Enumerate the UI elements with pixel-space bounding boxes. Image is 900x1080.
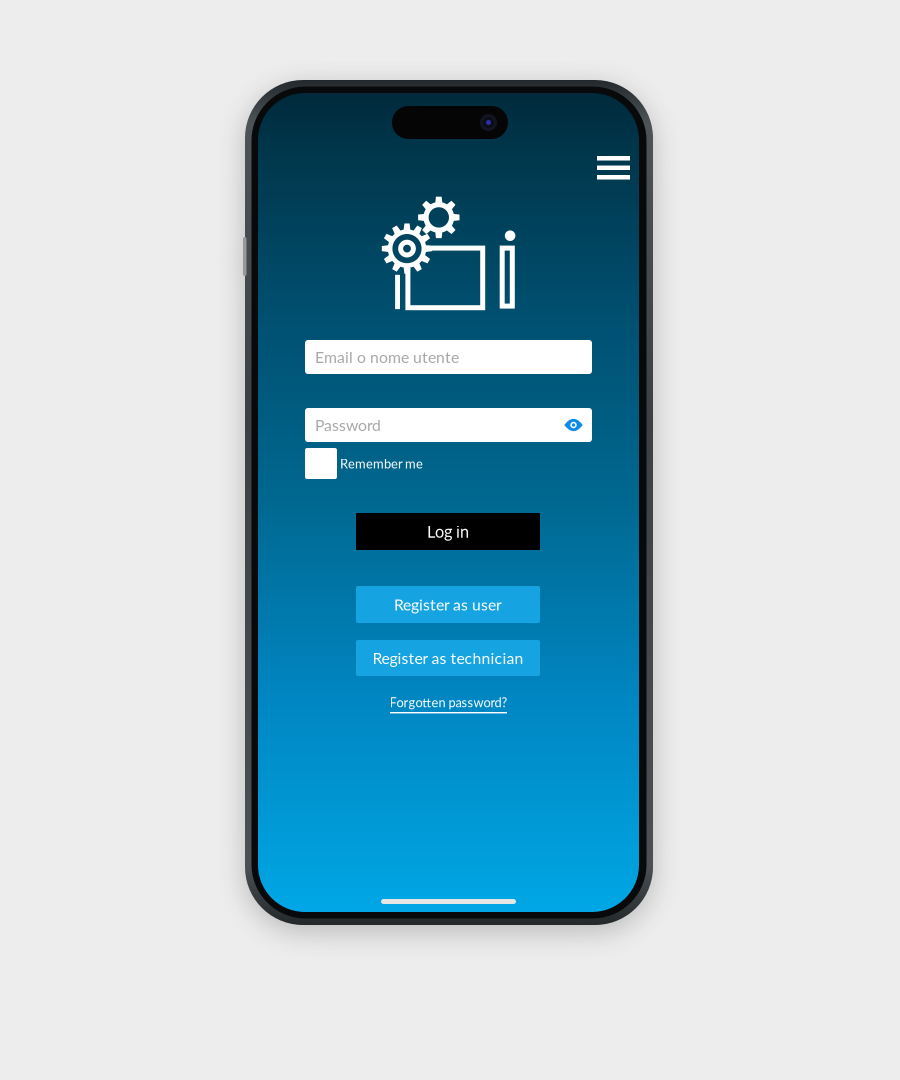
staticText: Email o nome utente [315, 348, 459, 366]
staticText: Forgotten password? [389, 695, 507, 710]
button[interactable]: Log in [356, 513, 540, 550]
staticText: Remember me [340, 456, 423, 471]
staticText: Log in [427, 522, 469, 541]
button[interactable]: Forgotten password? [358, 691, 538, 717]
staticText: Password [315, 416, 381, 434]
button[interactable]: Remember me [305, 448, 485, 479]
button[interactable]: Show password [564, 418, 583, 431]
button[interactable]: Register as user [356, 586, 540, 623]
staticText: Register as user [394, 595, 502, 614]
staticText: Register as technician [372, 649, 523, 667]
button[interactable]: Menu [589, 148, 638, 187]
button[interactable]: Register as technician [356, 640, 540, 676]
